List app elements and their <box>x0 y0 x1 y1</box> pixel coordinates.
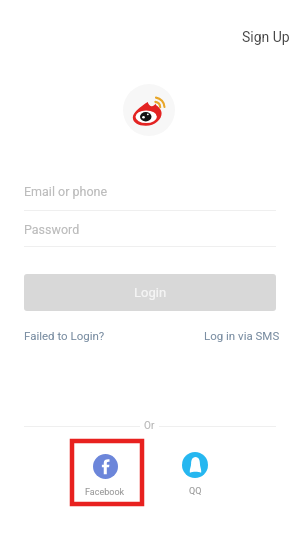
staticText: Log in via SMS <box>204 329 280 342</box>
button[interactable]: QQ login <box>170 452 220 497</box>
staticText: Password <box>24 222 80 237</box>
other: QQ login <box>182 452 208 478</box>
button[interactable]: Failed to Login? <box>24 329 105 342</box>
staticText: Email or phone <box>24 184 108 199</box>
button[interactable]: Log in via SMS <box>204 329 280 342</box>
staticText: Login <box>134 285 167 300</box>
staticText: Facebook <box>85 487 125 498</box>
button[interactable]: Facebook login <box>80 454 130 498</box>
staticText: Failed to Login? <box>24 329 105 342</box>
button[interactable]: Sign Up <box>236 24 296 50</box>
staticText: Or <box>144 420 155 432</box>
staticText: Sign Up <box>242 29 290 45</box>
other: Facebook login <box>93 454 118 479</box>
staticText: QQ <box>189 486 202 497</box>
